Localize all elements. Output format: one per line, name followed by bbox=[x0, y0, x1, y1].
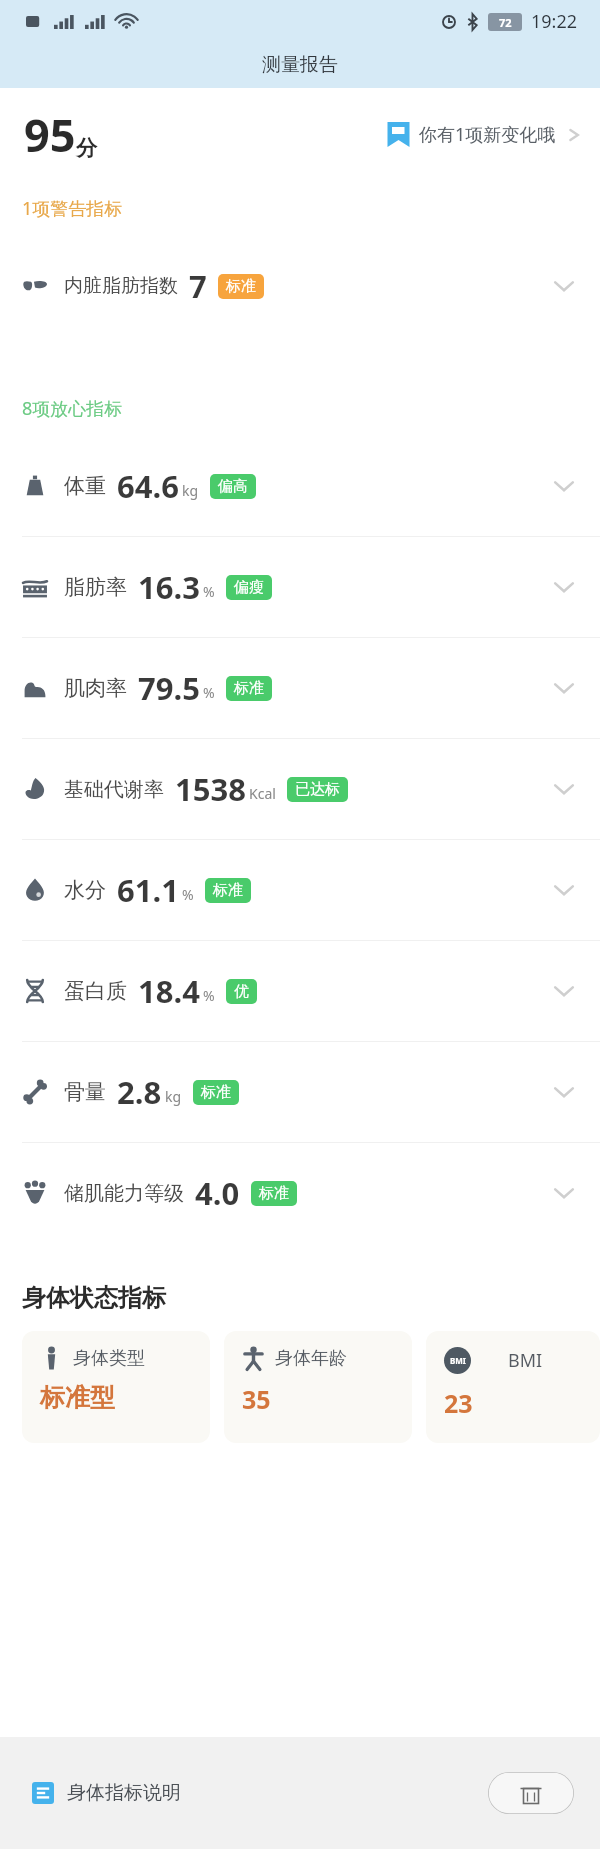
staticText: 优 bbox=[234, 982, 249, 1001]
staticText: 4.0 bbox=[195, 1172, 240, 1214]
staticText: 脂肪率 bbox=[64, 574, 127, 600]
staticText: 骨量 bbox=[64, 1079, 106, 1105]
button[interactable]: 展开 储肌能力等级 bbox=[542, 1171, 586, 1215]
button[interactable]: 身体类型 bbox=[22, 1331, 210, 1443]
staticText: 7 bbox=[189, 265, 207, 307]
staticText: 79.5 bbox=[138, 667, 200, 709]
staticText: 标准 bbox=[201, 1083, 231, 1102]
staticText: 你有1项新变化哦 bbox=[419, 122, 556, 147]
button[interactable]: 内脏脂肪指数 bbox=[0, 236, 600, 336]
staticText: 16.3 bbox=[138, 566, 200, 608]
staticText: 体重 bbox=[64, 473, 106, 499]
staticText: kg bbox=[182, 481, 199, 500]
staticText: 61.1 bbox=[117, 869, 179, 911]
staticText: 8项放心指标 bbox=[22, 396, 123, 421]
button[interactable]: 展开 脂肪率 bbox=[542, 565, 586, 609]
staticText: BMI bbox=[508, 1348, 543, 1373]
staticText: 偏瘦 bbox=[234, 578, 264, 597]
staticText: 72 bbox=[499, 15, 512, 30]
staticText: 内脏脂肪指数 bbox=[64, 274, 178, 298]
staticText: 身体指标说明 bbox=[67, 1781, 181, 1805]
staticText: 标准 bbox=[226, 277, 256, 296]
staticText: 19:22 bbox=[531, 9, 578, 34]
button[interactable]: 展开 基础代谢率 bbox=[542, 767, 586, 811]
staticText: 蛋白质 bbox=[64, 978, 127, 1004]
button[interactable]: 展开 水分 bbox=[542, 868, 586, 912]
staticText: 身体年龄 bbox=[275, 1347, 347, 1370]
staticText: 1项警告指标 bbox=[22, 196, 123, 221]
staticText: 18.4 bbox=[138, 970, 200, 1012]
staticText: 身体状态指标 bbox=[22, 1283, 166, 1313]
staticText: 标准 bbox=[259, 1184, 289, 1203]
staticText: Kcal bbox=[249, 784, 276, 803]
staticText: % bbox=[182, 885, 194, 904]
staticText: 分 bbox=[76, 135, 97, 161]
button[interactable]: 水分 bbox=[0, 840, 600, 940]
button[interactable]: 展开 蛋白质 bbox=[542, 969, 586, 1013]
button[interactable]: 身体年龄 bbox=[224, 1331, 412, 1443]
button[interactable]: 骨量 bbox=[0, 1042, 600, 1142]
staticText: 基础代谢率 bbox=[64, 777, 164, 802]
staticText: 储肌能力等级 bbox=[64, 1181, 184, 1206]
button[interactable]: 基础代谢率 bbox=[0, 739, 600, 839]
button[interactable]: 删除 bbox=[488, 1772, 574, 1814]
staticText: 测量报告 bbox=[262, 53, 338, 77]
staticText: 64.6 bbox=[117, 465, 179, 507]
button[interactable]: 你有1项新变化哦 bbox=[382, 114, 584, 155]
staticText: % bbox=[203, 683, 215, 702]
button[interactable]: 展开 骨量 bbox=[542, 1070, 586, 1114]
button[interactable]: 蛋白质 bbox=[0, 941, 600, 1041]
staticText: 标准 bbox=[234, 679, 264, 698]
button[interactable]: 展开 体重 bbox=[542, 464, 586, 508]
staticText: 2.8 bbox=[117, 1071, 162, 1113]
button[interactable]: 体重 bbox=[0, 436, 600, 536]
button[interactable]: 身体指标说明 bbox=[30, 1771, 183, 1815]
staticText: 肌肉率 bbox=[64, 675, 127, 701]
button[interactable]: 展开 内脏脂肪指数 bbox=[542, 264, 586, 308]
staticText: kg bbox=[165, 1087, 182, 1106]
staticText: BMI bbox=[450, 1355, 466, 1366]
staticText: 已达标 bbox=[295, 780, 340, 799]
button[interactable]: 展开 肌肉率 bbox=[542, 666, 586, 710]
staticText: 95 bbox=[24, 104, 76, 165]
staticText: 标准 bbox=[213, 881, 243, 900]
staticText: 标准型 bbox=[40, 1382, 115, 1413]
staticText: 23 bbox=[444, 1386, 473, 1420]
button[interactable]: 储肌能力等级 bbox=[0, 1143, 600, 1243]
button[interactable]: 脂肪率 bbox=[0, 537, 600, 637]
staticText: 1538 bbox=[175, 768, 246, 810]
staticText: 偏高 bbox=[218, 477, 248, 496]
staticText: 水分 bbox=[64, 877, 106, 903]
staticText: % bbox=[203, 582, 215, 601]
staticText: 身体类型 bbox=[73, 1347, 145, 1370]
staticText: 35 bbox=[242, 1382, 271, 1416]
button[interactable]: BMI bbox=[426, 1331, 600, 1443]
staticText: % bbox=[203, 986, 215, 1005]
button[interactable]: 肌肉率 bbox=[0, 638, 600, 738]
